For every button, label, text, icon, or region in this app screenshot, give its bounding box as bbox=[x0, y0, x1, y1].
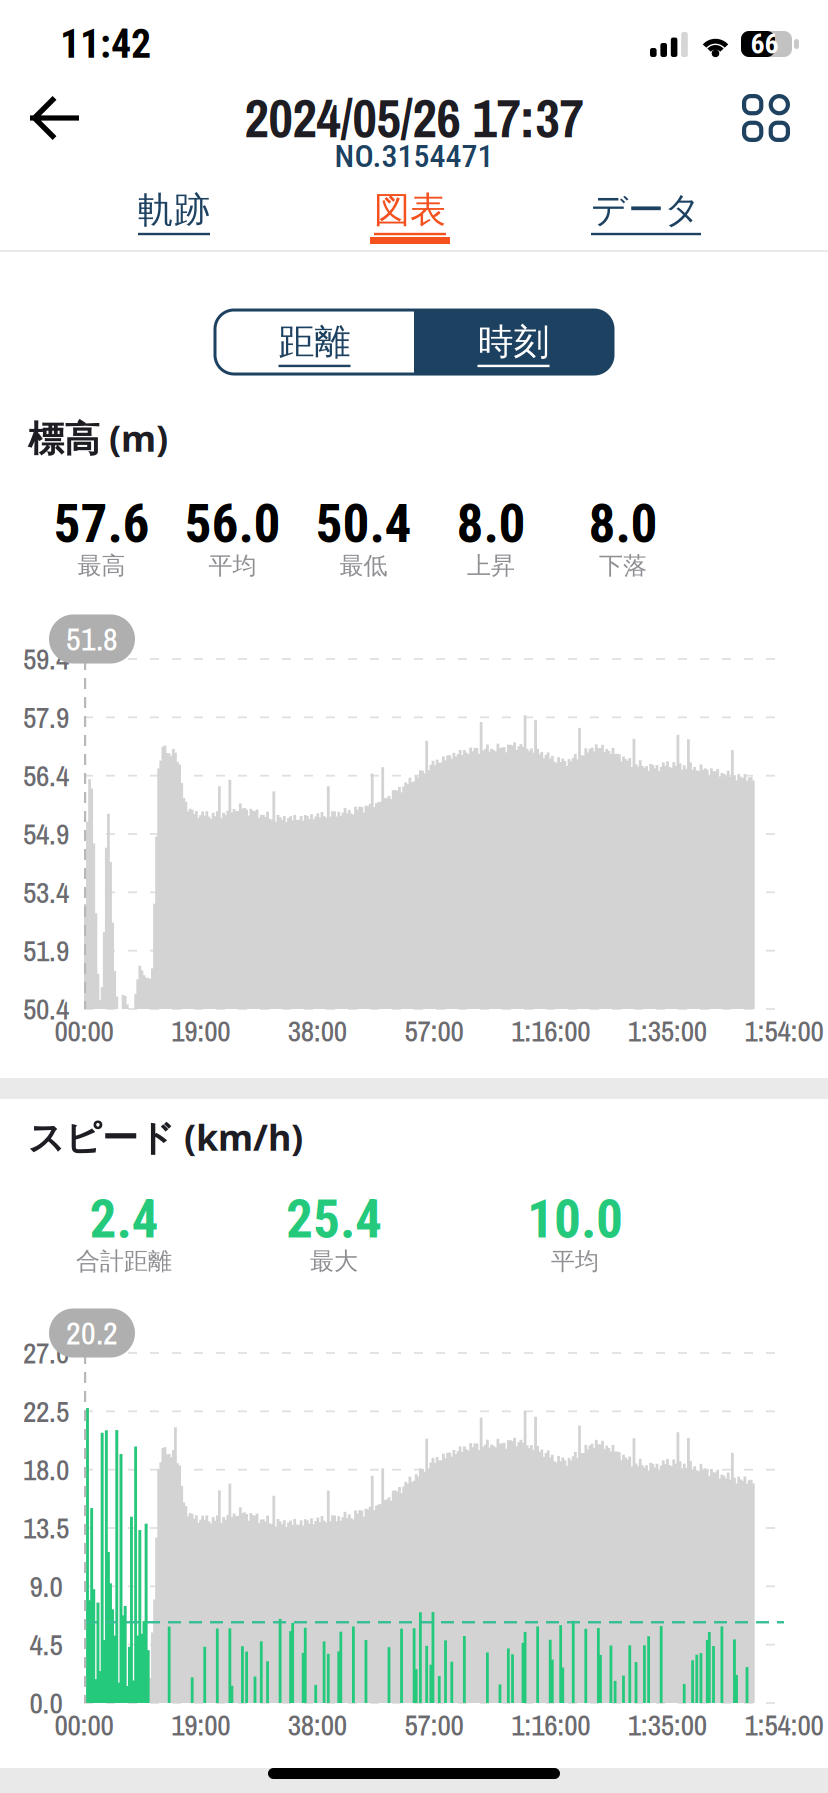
staticText: 2024/05/26 17:37 bbox=[244, 82, 583, 154]
staticText: 54.9 bbox=[23, 814, 69, 854]
staticText: 1:54:00 bbox=[744, 1011, 823, 1051]
staticText: 1:16:00 bbox=[511, 1011, 590, 1051]
staticText: 50.4 bbox=[315, 492, 411, 555]
staticText: 合計距離 bbox=[76, 1246, 172, 1276]
staticText: 56.0 bbox=[184, 492, 280, 555]
staticText: 66 bbox=[750, 28, 778, 60]
staticText: 13.5 bbox=[23, 1508, 69, 1548]
staticText: 距離 bbox=[278, 320, 350, 364]
staticText: 8.0 bbox=[456, 492, 525, 555]
staticText: 最高 bbox=[77, 551, 125, 580]
staticText: 9.0 bbox=[29, 1567, 62, 1606]
staticText: 1:35:00 bbox=[628, 1011, 707, 1051]
button[interactable]: Grid view bbox=[714, 78, 818, 158]
button[interactable]: 図表 bbox=[292, 182, 528, 244]
staticText: 上昇 bbox=[467, 551, 515, 580]
staticText: 56.4 bbox=[23, 756, 69, 795]
staticText: 1:35:00 bbox=[628, 1705, 707, 1745]
staticText: 38:00 bbox=[288, 1705, 347, 1745]
staticText: 標高 (m) bbox=[28, 414, 168, 462]
staticText: 00:00 bbox=[54, 1705, 113, 1745]
staticText: 38:00 bbox=[288, 1011, 347, 1051]
staticText: 18.0 bbox=[23, 1450, 69, 1489]
staticText: NO.3154471 bbox=[334, 137, 493, 175]
staticText: 57.6 bbox=[53, 492, 149, 555]
staticText: 57.9 bbox=[23, 698, 69, 737]
staticText: 51.9 bbox=[23, 931, 69, 970]
staticText: 57:00 bbox=[404, 1705, 463, 1745]
staticText: 11:42 bbox=[60, 21, 151, 67]
staticText: 50.4 bbox=[23, 989, 69, 1029]
staticText: 図表 bbox=[374, 188, 446, 232]
staticText: 最大 bbox=[310, 1246, 358, 1276]
staticText: 10.0 bbox=[527, 1188, 623, 1250]
staticText: 25.4 bbox=[286, 1188, 382, 1250]
button[interactable]: 軌跡 bbox=[56, 182, 292, 244]
staticText: スピード (km/h) bbox=[28, 1113, 303, 1161]
button[interactable]: Back bbox=[0, 78, 108, 158]
staticText: 19:00 bbox=[171, 1705, 230, 1745]
staticText: 22.5 bbox=[23, 1392, 69, 1431]
button[interactable]: データ bbox=[528, 182, 764, 244]
staticText: 時刻 bbox=[477, 320, 549, 364]
staticText: 軌跡 bbox=[138, 188, 210, 232]
button[interactable]: 距離 bbox=[215, 310, 414, 374]
staticText: 平均 bbox=[208, 551, 256, 580]
staticText: 57:00 bbox=[404, 1011, 463, 1051]
staticText: 最低 bbox=[339, 551, 387, 580]
staticText: 53.4 bbox=[23, 873, 69, 912]
staticText: 00:00 bbox=[54, 1011, 113, 1051]
staticText: 20.2 bbox=[66, 1311, 118, 1354]
staticText: 1:54:00 bbox=[744, 1705, 823, 1745]
staticText: 59.4 bbox=[23, 639, 69, 679]
staticText: 下落 bbox=[599, 551, 647, 580]
staticText: 2.4 bbox=[89, 1188, 158, 1250]
staticText: 8.0 bbox=[588, 492, 657, 555]
staticText: 1:16:00 bbox=[511, 1705, 590, 1745]
staticText: データ bbox=[591, 188, 701, 232]
staticText: 平均 bbox=[551, 1246, 599, 1276]
staticText: 51.8 bbox=[66, 617, 118, 660]
staticText: 4.5 bbox=[29, 1625, 62, 1664]
button[interactable]: 時刻 bbox=[414, 310, 613, 374]
staticText: 19:00 bbox=[171, 1011, 230, 1051]
staticText: 0.0 bbox=[29, 1683, 62, 1723]
staticText: 27.0 bbox=[23, 1333, 69, 1373]
